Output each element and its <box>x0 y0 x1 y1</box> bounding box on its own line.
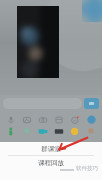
staticText: 群课堂 <box>41 145 61 153</box>
button[interactable]: Contact card <box>4 127 18 142</box>
button[interactable]: Camera <box>36 112 50 127</box>
button[interactable]: File <box>52 112 66 127</box>
button[interactable]: Photo <box>20 112 34 127</box>
staticText: 课程回放 <box>38 159 64 167</box>
button[interactable]: Location <box>20 127 34 142</box>
button[interactable]: Favourites <box>84 127 98 142</box>
button[interactable]: More <box>84 112 98 127</box>
button[interactable]: Emoji <box>68 112 82 127</box>
button[interactable]: Video call <box>36 127 50 142</box>
button[interactable]: Transfer <box>68 127 82 142</box>
staticText: 软件技巧 <box>76 165 98 172</box>
button[interactable]: 群课堂 <box>0 142 102 155</box>
button[interactable]: Red packet <box>52 127 66 142</box>
button[interactable]: Send <box>84 98 99 109</box>
button[interactable]: Voice message <box>4 112 18 127</box>
button[interactable]: 课程回放 <box>0 156 102 169</box>
